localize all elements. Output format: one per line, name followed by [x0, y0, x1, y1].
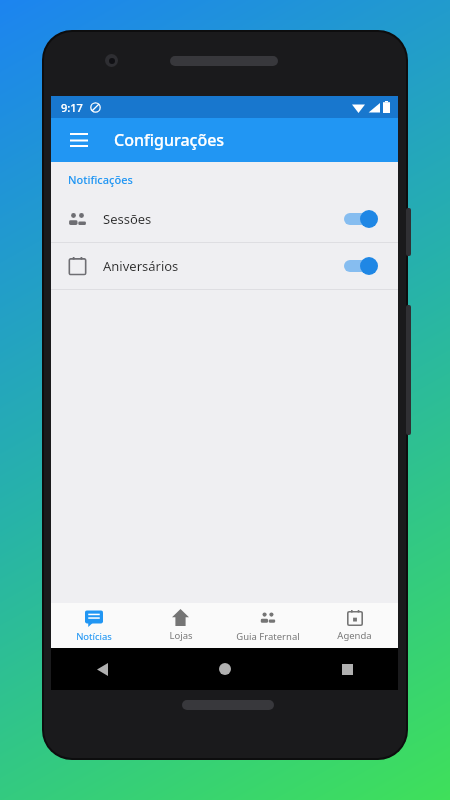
button[interactable]: Lojas [137, 603, 224, 648]
button[interactable] [342, 208, 380, 230]
staticText: Aniversários [103, 257, 179, 275]
button[interactable]: Agenda [311, 603, 398, 648]
button[interactable]: Recent apps [330, 652, 364, 686]
button[interactable]: Sessões [51, 196, 398, 242]
button[interactable]: Back [85, 652, 119, 686]
staticText: Configurações [114, 129, 225, 151]
button[interactable]: Aniversários [51, 243, 398, 289]
staticText: Sessões [103, 210, 152, 228]
staticText: Agenda [337, 629, 372, 642]
staticText: Notícias [76, 630, 112, 643]
staticText: Notificações [68, 172, 133, 187]
button[interactable]: Notícias [51, 603, 137, 648]
staticText: 9:17 [61, 100, 83, 115]
staticText: Lojas [169, 629, 193, 642]
button[interactable]: Guia Fraternal [224, 603, 311, 648]
button[interactable] [342, 255, 380, 277]
staticText: Guia Fraternal [236, 630, 300, 643]
button[interactable]: Open navigation menu [61, 122, 97, 158]
button[interactable]: Home [208, 652, 242, 686]
